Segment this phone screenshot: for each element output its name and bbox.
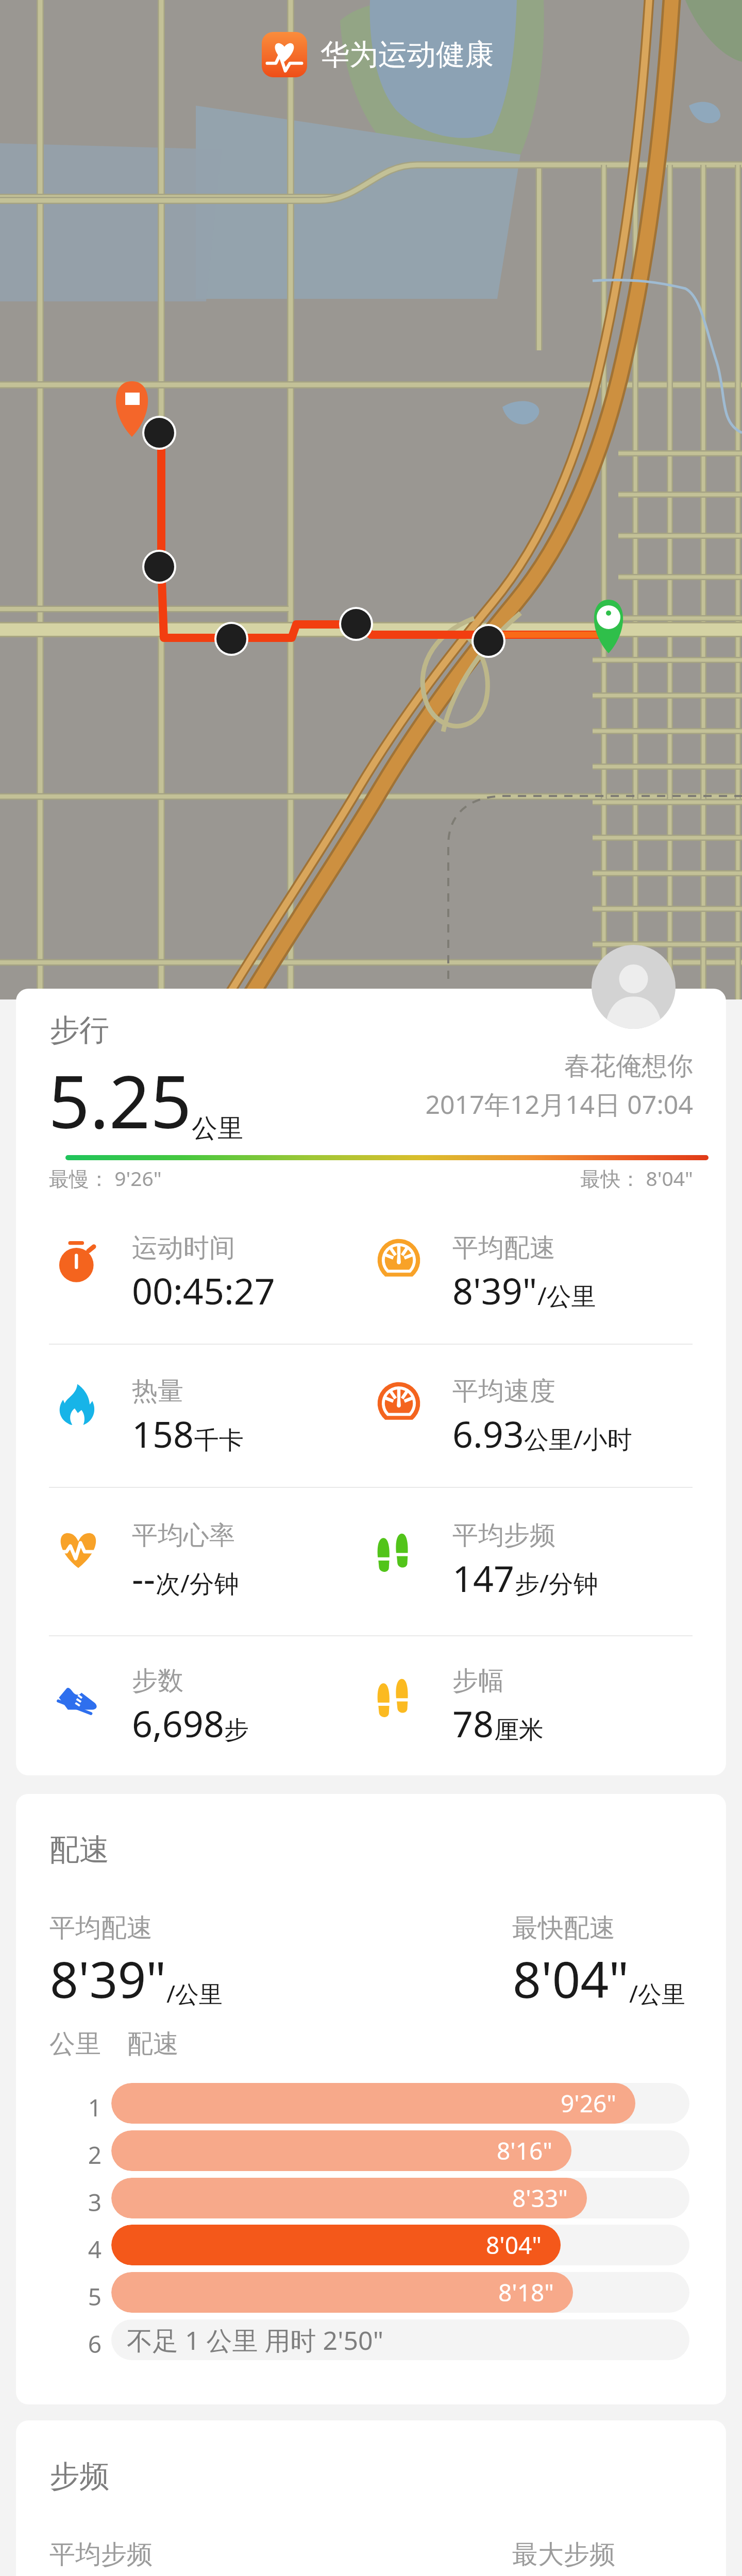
button[interactable]: 平均速度 (375, 1372, 554, 1421)
staticText: 8'39" (452, 1266, 537, 1315)
staticText: 6.93 (452, 1409, 524, 1458)
staticText: 步数 (132, 1665, 183, 1697)
staticText: 次/分钟 (156, 1566, 239, 1600)
staticText: 6 (78, 2328, 112, 2360)
staticText: 步 (224, 1715, 249, 1745)
staticText: 平均配速 (452, 1232, 555, 1264)
staticText: 4 (78, 2233, 112, 2265)
staticText: 不足 1 公里 用时 2'50" (127, 2323, 384, 2358)
staticText: 公里/小时 (524, 1422, 632, 1456)
staticText: 2 (78, 2139, 112, 2171)
button[interactable]: 2 (16, 2130, 594, 2171)
button[interactable]: 4 (16, 2225, 594, 2265)
staticText: 步幅 (452, 1665, 504, 1697)
staticText: /公里 (166, 1977, 223, 2010)
button[interactable]: 平均配速 (375, 1229, 518, 1278)
button[interactable]: 3 (16, 2178, 594, 2218)
button[interactable]: User avatar (592, 945, 676, 1029)
button[interactable]: 5 (16, 2272, 594, 2313)
staticText: 最大步频 (512, 2538, 615, 2571)
staticText: 8'04" (513, 1945, 629, 2012)
staticText: 步频 (49, 2458, 109, 2495)
staticText: 9'26" (561, 2087, 617, 2120)
staticText: 厘米 (494, 1715, 544, 1745)
staticText: 配速 (127, 2028, 179, 2060)
staticText: 公里 (192, 1112, 243, 1145)
staticText: 配速 (49, 1831, 109, 1869)
button[interactable]: 热量 (54, 1372, 166, 1421)
button[interactable]: 平均步频 (375, 1516, 520, 1565)
staticText: 2017年12月14日 07:04 (171, 1087, 693, 1122)
staticText: 热量 (132, 1375, 183, 1408)
staticText: 平均步频 (49, 2538, 153, 2571)
staticText: 最慢： 9'26" (49, 1164, 162, 1192)
staticText: 6,698 (132, 1699, 224, 1748)
staticText: 8'33" (512, 2182, 568, 2214)
button[interactable]: 1 (16, 2083, 594, 2124)
staticText: 最快： 8'04" (325, 1164, 693, 1192)
staticText: 5 (78, 2280, 112, 2313)
staticText: 平均速度 (452, 1375, 555, 1408)
staticText: 00:45:27 (132, 1266, 275, 1315)
staticText: 147 (452, 1553, 515, 1602)
staticText: /公里 (537, 1279, 596, 1313)
button[interactable]: 平均心率 (54, 1516, 161, 1565)
staticText: 8'04" (486, 2229, 542, 2261)
staticText: 5.25 (48, 1051, 192, 1149)
staticText: 步/分钟 (515, 1566, 598, 1600)
staticText: 78 (452, 1699, 494, 1748)
staticText: 8'16" (497, 2134, 553, 2167)
staticText: -- (132, 1553, 156, 1602)
staticText: 8'18" (498, 2276, 554, 2309)
button[interactable]: 步数 (54, 1662, 171, 1710)
staticText: 千卡 (194, 1425, 244, 1456)
staticText: 平均心率 (132, 1519, 235, 1552)
staticText: 春花俺想你 (171, 1050, 693, 1082)
staticText: 华为运动健康 (321, 37, 494, 73)
staticText: 最快配速 (512, 1912, 615, 1944)
staticText: 1 (78, 2091, 112, 2124)
staticText: 公里 (49, 2028, 101, 2060)
button[interactable]: 6 (16, 2319, 594, 2360)
staticText: 平均配速 (49, 1912, 153, 1944)
staticText: 3 (78, 2186, 112, 2218)
button[interactable]: Huawei Health (262, 32, 494, 77)
button[interactable]: 步幅 (375, 1662, 466, 1710)
button[interactable]: 运动时间 (54, 1229, 197, 1278)
staticText: 运动时间 (132, 1232, 235, 1264)
staticText: 8'39" (50, 1945, 166, 2012)
staticText: /公里 (629, 1977, 686, 2010)
staticText: 步行 (49, 1011, 109, 1049)
staticText: 平均步频 (452, 1519, 555, 1552)
staticText: 158 (132, 1409, 194, 1458)
